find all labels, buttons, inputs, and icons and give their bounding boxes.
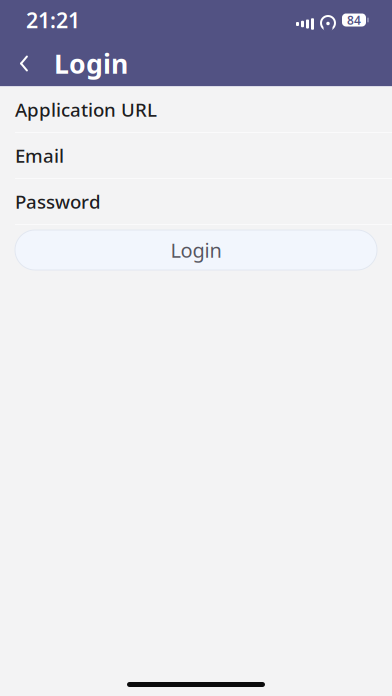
button[interactable]: Login [15,230,377,270]
staticText: Login [170,237,221,263]
staticText: Application URL [15,97,157,122]
staticText: Password [15,189,101,214]
staticText: 84 [347,12,361,28]
staticText: Email [15,143,64,168]
button[interactable]: Back [2,41,46,85]
staticText: 21:21 [26,6,80,34]
staticText: Login [54,46,128,81]
